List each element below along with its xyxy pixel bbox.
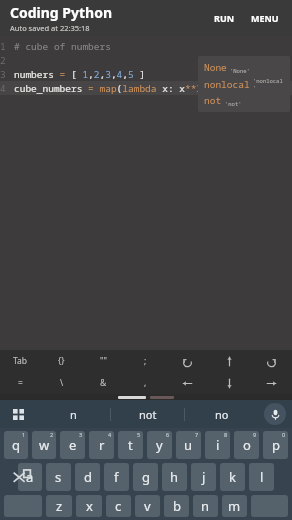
staticText: Auto saved at 22:35:18 [10, 23, 90, 33]
staticText: y [156, 436, 163, 454]
staticText: "" [100, 355, 107, 367]
button[interactable]: x [76, 495, 102, 517]
staticText: v [144, 497, 151, 515]
button[interactable]: n [193, 495, 218, 517]
button[interactable]: i [205, 431, 230, 459]
button[interactable]: no [185, 400, 258, 428]
button[interactable]: nonlocal [204, 77, 284, 91]
staticText: l [260, 468, 264, 486]
button[interactable]: j [191, 463, 216, 491]
staticText: 2 [0, 54, 6, 67]
staticText: a [26, 468, 34, 486]
button[interactable]: & [82, 372, 124, 394]
staticText: Coding Python [10, 3, 113, 22]
button[interactable]: r [89, 431, 114, 459]
button[interactable]: d [75, 463, 100, 491]
staticText: w [39, 436, 50, 454]
staticText: s [55, 468, 62, 486]
button[interactable]: None [204, 61, 284, 74]
staticText: n [70, 407, 77, 422]
staticText: r [99, 436, 105, 454]
staticText: RUN [214, 12, 235, 24]
staticText: , [144, 377, 147, 389]
staticText: & [100, 377, 107, 389]
staticText: i [216, 436, 220, 454]
button[interactable]: , [124, 372, 166, 394]
staticText: None [204, 61, 227, 74]
staticText: n [201, 497, 210, 515]
button[interactable]: RUN [209, 8, 240, 28]
button[interactable]: n [36, 400, 110, 428]
button[interactable]: c [106, 495, 131, 517]
button[interactable]: Move up [208, 350, 250, 372]
staticText: h [170, 468, 179, 486]
button[interactable]: s [46, 463, 71, 491]
button[interactable]: not [111, 400, 184, 428]
staticText: 1 [22, 431, 26, 438]
staticText: MENU [251, 12, 279, 24]
button[interactable]: b [164, 495, 189, 517]
button[interactable]: a [18, 463, 42, 491]
button[interactable]: g [133, 463, 158, 491]
button[interactable]: Voice input [258, 400, 292, 428]
button[interactable]: Undo [166, 350, 208, 372]
staticText: 'not' [225, 100, 242, 107]
staticText: 3 [0, 68, 6, 81]
button[interactable]: t [118, 431, 143, 459]
button[interactable]: l [249, 463, 274, 491]
button[interactable]: Redo [250, 350, 292, 372]
staticText: 'None' [230, 67, 250, 74]
button[interactable]: {} [41, 350, 82, 372]
button[interactable]: q [4, 431, 28, 459]
button[interactable]: p [263, 431, 288, 459]
button[interactable]: o [234, 431, 259, 459]
button[interactable]: "" [82, 350, 124, 372]
staticText: Tab [13, 355, 28, 367]
button[interactable]: \ [41, 372, 82, 394]
button[interactable]: e [60, 431, 85, 459]
button[interactable]: Move left [166, 372, 208, 394]
staticText: 8 [224, 431, 228, 438]
staticText: # cube of numbers [14, 40, 111, 53]
button[interactable]: y [147, 431, 172, 459]
button[interactable]: Move right [250, 372, 292, 394]
button[interactable]: u [176, 431, 201, 459]
staticText: ; [144, 355, 147, 367]
staticText: 'nonlocal' [253, 77, 284, 91]
staticText: f [114, 468, 119, 486]
button[interactable]: not [204, 94, 284, 107]
button[interactable]: MENU [246, 8, 284, 28]
staticText: o [243, 436, 251, 454]
staticText: nonlocal [204, 78, 250, 91]
staticText: not [204, 94, 222, 107]
staticText: 5 [137, 431, 141, 438]
staticText: d [84, 468, 92, 486]
button[interactable]: Tab [0, 350, 41, 372]
button[interactable]: Move down [208, 372, 250, 394]
button[interactable]: m [222, 495, 247, 517]
button[interactable]: h [162, 463, 187, 491]
staticText: no [215, 407, 229, 422]
staticText: p [272, 436, 280, 454]
staticText: 4 [0, 82, 6, 95]
button[interactable]: f [104, 463, 129, 491]
button[interactable]: k [220, 463, 245, 491]
button[interactable]: Clipboard [0, 400, 36, 428]
button[interactable]: w [32, 431, 56, 459]
staticText: cube_numbers = map(lambda x: x**3 , n [14, 82, 225, 95]
staticText: 9 [253, 431, 257, 438]
button[interactable]: z [46, 495, 72, 517]
staticText: 1 [0, 40, 6, 53]
staticText: c [115, 497, 122, 515]
staticText: not [139, 407, 157, 422]
button[interactable]: ; [124, 350, 166, 372]
button[interactable]: v [135, 495, 160, 517]
staticText: 7 [195, 431, 199, 438]
button[interactable]: = [0, 372, 41, 394]
staticText: j [202, 468, 206, 486]
staticText: m [228, 497, 241, 515]
staticText: 3 [79, 431, 83, 438]
staticText: 4 [108, 431, 112, 438]
